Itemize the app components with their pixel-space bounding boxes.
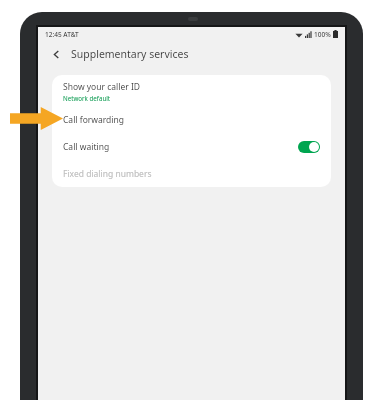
button[interactable]: Show your caller ID <box>52 75 331 107</box>
staticText: Fixed dialing numbers <box>63 168 152 180</box>
staticText: Call forwarding <box>63 114 125 126</box>
staticText: 12:45 AT&T <box>45 30 79 39</box>
staticText: Supplementary services <box>71 47 189 61</box>
button[interactable]: Call forwarding <box>52 107 331 133</box>
staticText: 100% <box>314 30 331 39</box>
staticText: Show your caller ID <box>63 81 141 93</box>
staticText: Network default <box>63 94 111 102</box>
button[interactable]: Back <box>46 44 66 64</box>
button[interactable]: Call waiting toggle, on <box>298 141 320 153</box>
button[interactable]: Call waiting <box>52 133 331 161</box>
staticText: Call waiting <box>63 141 110 153</box>
button[interactable]: Fixed dialing numbers <box>52 161 331 187</box>
